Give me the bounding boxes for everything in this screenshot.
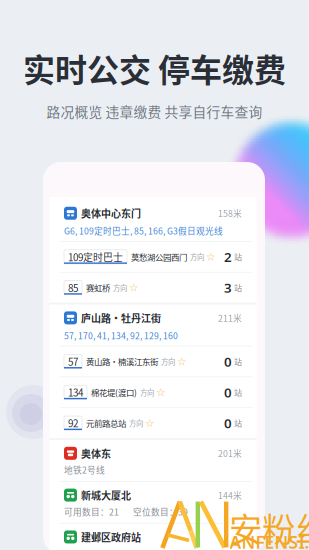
staticText: ☆ — [156, 386, 166, 398]
button[interactable]: 85 — [49, 273, 256, 303]
staticText: 85 — [68, 280, 78, 295]
staticText: ☆ — [129, 282, 139, 294]
staticText: 57, 170, 41, 134, 92, 129, 160 — [64, 329, 178, 342]
staticText: 92 — [68, 416, 78, 430]
staticText: 黄山路·楠溪江东街 — [86, 355, 158, 368]
staticText: 方向 — [129, 418, 143, 428]
staticText: 奥体东 — [81, 446, 111, 461]
staticText: 109定时巴士 — [68, 250, 123, 264]
staticText: 0 — [224, 383, 232, 401]
staticText: 158米 — [218, 207, 242, 219]
staticText: 57 — [68, 354, 78, 369]
staticText: 建邺区政府站 — [81, 530, 141, 544]
button[interactable]: 109定时巴士 — [49, 242, 256, 272]
staticText: G6, 109定时巴士, 85, 166, G3假日观光线 — [64, 224, 223, 237]
button[interactable]: 57 — [49, 346, 256, 376]
staticText: 方向 — [140, 387, 154, 398]
staticText: ANFENSI.COM — [229, 530, 309, 550]
button[interactable]: 新城大厦北 — [49, 482, 256, 523]
staticText: 134 — [68, 385, 83, 399]
staticText: 211米 — [218, 312, 242, 324]
staticText: ☆ — [145, 417, 155, 429]
staticText: 0 — [224, 414, 232, 432]
staticText: 可用数目：21 — [64, 505, 119, 518]
staticText: 站 — [234, 251, 242, 263]
button[interactable]: 134 — [49, 377, 256, 407]
staticText: 实时公交 停车缴费 — [23, 45, 286, 91]
staticText: 元前路总站 — [86, 417, 126, 429]
staticText: 安粉丝 — [229, 503, 309, 550]
staticText: 3 — [224, 279, 232, 296]
staticText: ☆ — [206, 251, 216, 263]
staticText: ☆ — [177, 355, 187, 367]
staticText: 方向 — [190, 251, 204, 262]
staticText: 2 — [224, 248, 232, 266]
staticText: 新城大厦北 — [81, 488, 131, 502]
staticText: 庐山路·牡丹江街 — [81, 311, 161, 325]
staticText: 站 — [234, 417, 242, 429]
staticText: 路况概览 违章缴费 共享自行车查询 — [46, 101, 262, 121]
staticText: 赛虹桥 — [86, 281, 110, 294]
staticText: 莫愁湖公园西门 — [131, 251, 187, 263]
button[interactable]: 建邺区政府站 — [49, 524, 256, 550]
staticText: 144米 — [218, 489, 242, 501]
staticText: 空位数目：39 — [133, 505, 188, 518]
staticText: 站 — [234, 282, 242, 293]
staticText: 站 — [234, 356, 242, 367]
staticText: 0 — [224, 353, 232, 370]
staticText: 方向 — [161, 356, 175, 367]
staticText: 方向 — [113, 282, 127, 293]
button[interactable]: 92 — [49, 408, 256, 438]
staticText: 201米 — [218, 447, 242, 459]
staticText: 奥体中心东门 — [81, 206, 141, 220]
button[interactable]: 奥体东 — [49, 440, 256, 481]
staticText: 站 — [234, 386, 242, 398]
staticText: 地铁2号线 — [64, 463, 105, 476]
staticText: 棉花堤(渡口) — [91, 386, 137, 398]
